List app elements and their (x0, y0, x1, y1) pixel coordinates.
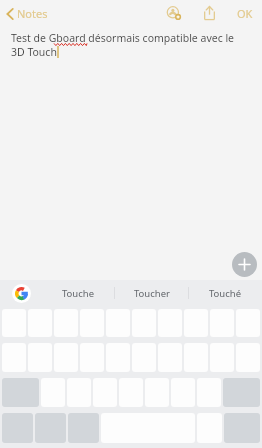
button[interactable]: Touche (42, 280, 114, 306)
staticText: Test de Gboard désormais compatible avec… (11, 31, 235, 45)
staticText: OK (237, 6, 253, 21)
button[interactable]: Toucher (115, 280, 188, 306)
button[interactable]: Share (199, 1, 220, 25)
staticText: Touché (209, 287, 242, 300)
button[interactable]: Notes (0, 2, 56, 25)
button[interactable]: OK (231, 2, 259, 25)
staticText: Toucher (134, 287, 170, 300)
staticText: Notes (17, 6, 48, 21)
button[interactable]: Touché (189, 280, 262, 306)
button[interactable]: Test de Gboard désormais compatible avec… (0, 26, 262, 280)
button[interactable]: Google search (0, 280, 42, 306)
staticText: Touche (62, 287, 95, 300)
staticText: 3D Touch (11, 45, 57, 59)
button[interactable]: Add note (232, 252, 257, 277)
button[interactable]: Add people (162, 1, 186, 25)
